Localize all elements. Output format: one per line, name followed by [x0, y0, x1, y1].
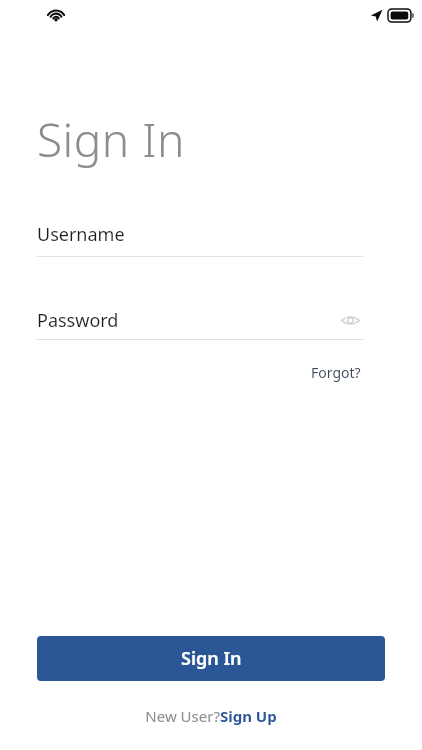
- staticText: Password: [37, 308, 119, 333]
- staticText: Sign In: [37, 108, 185, 171]
- staticText: Sign In: [181, 646, 242, 671]
- button[interactable]: Forgot?: [309, 360, 363, 385]
- staticText: Username: [37, 222, 125, 247]
- button[interactable]: Username: [37, 222, 363, 257]
- button[interactable]: Password: [37, 307, 363, 333]
- staticText: Forgot?: [311, 363, 361, 382]
- button[interactable]: New User?Sign Up: [139, 703, 283, 729]
- button[interactable]: Sign In: [37, 636, 385, 681]
- staticText: New User?Sign Up: [145, 706, 277, 726]
- button[interactable]: Show password: [337, 307, 363, 333]
